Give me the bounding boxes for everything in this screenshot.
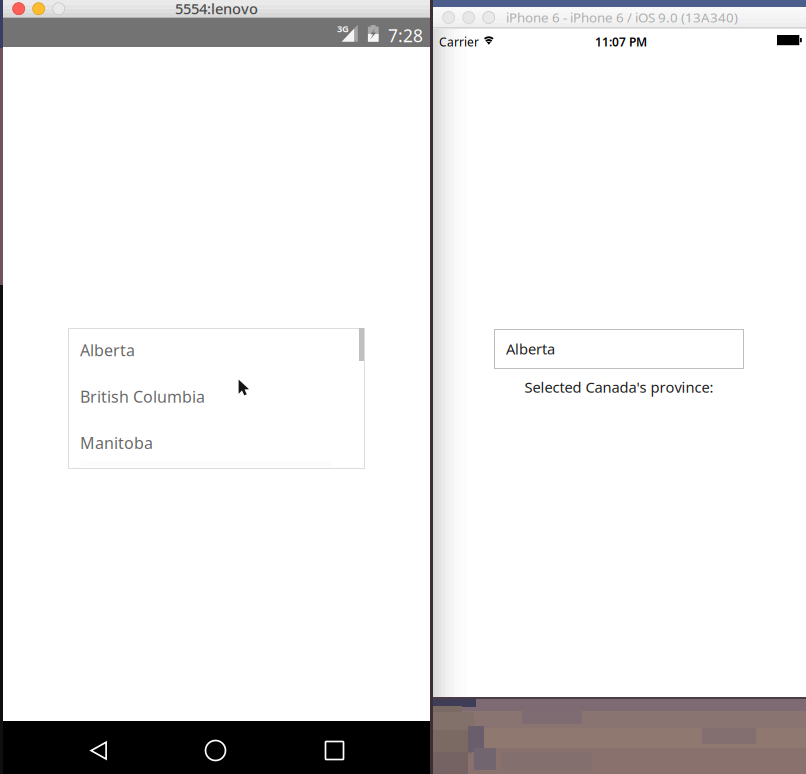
button[interactable]: Close window <box>13 3 25 15</box>
staticText: iPhone 6 - iPhone 6 / iOS 9.0 (13A340) <box>506 8 738 26</box>
button[interactable]: Close window <box>443 11 455 23</box>
button[interactable]: Alberta <box>68 327 363 373</box>
button[interactable]: Minimize window <box>463 11 475 23</box>
staticText: Alberta <box>80 339 135 361</box>
button[interactable]: British Columbia <box>68 373 363 420</box>
staticText: 3G <box>337 22 349 35</box>
staticText: 11:07 PM <box>595 34 647 50</box>
button[interactable]: Alberta <box>494 329 744 369</box>
staticText: Alberta <box>506 339 555 358</box>
button[interactable]: Recent apps <box>286 721 382 774</box>
staticText: 7:28 <box>388 24 423 47</box>
staticText: Manitoba <box>80 432 153 453</box>
button[interactable]: Back <box>50 721 146 774</box>
staticText: 5554:lenovo <box>175 0 258 18</box>
staticText: Selected Canada's province: <box>524 377 713 397</box>
button[interactable]: Zoom window <box>53 3 65 15</box>
button[interactable]: Manitoba <box>68 420 363 466</box>
button[interactable]: Minimize window <box>33 3 45 15</box>
button[interactable]: Zoom window <box>483 11 495 23</box>
button[interactable]: Home <box>167 721 263 774</box>
staticText: Carrier <box>439 34 479 50</box>
staticText: British Columbia <box>80 386 205 407</box>
